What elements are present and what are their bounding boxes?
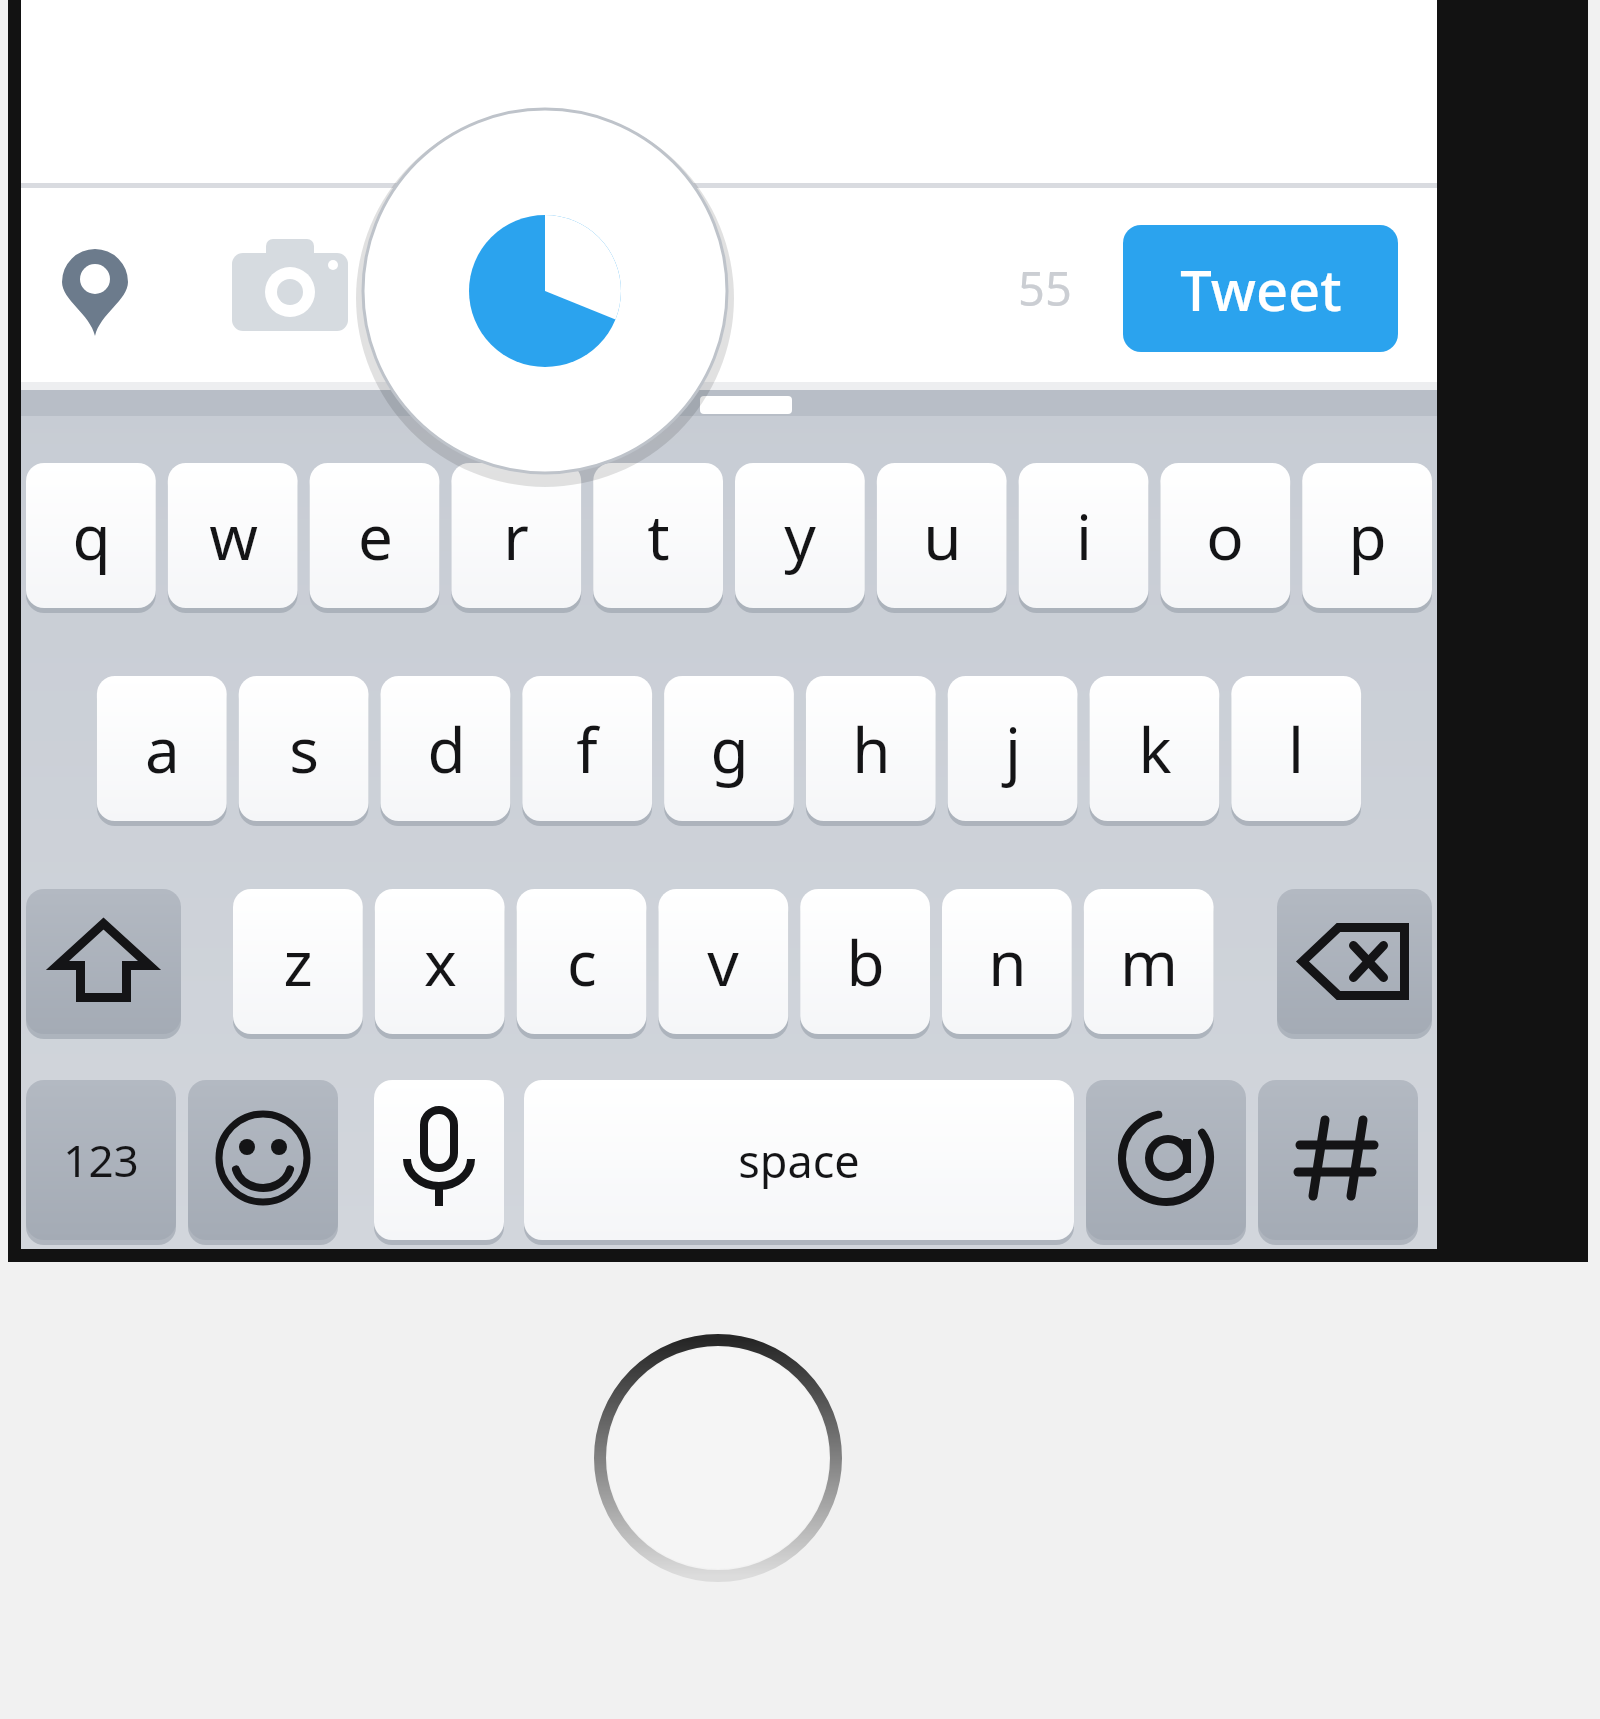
staticText: h: [852, 707, 891, 791]
staticText: k: [1138, 707, 1172, 791]
button[interactable]: Shift: [26, 889, 181, 1034]
staticText: w: [209, 494, 258, 578]
staticText: m: [1120, 920, 1178, 1004]
staticText: s: [289, 707, 319, 791]
staticText: n: [988, 920, 1027, 1004]
button[interactable]: Hashtag: [1258, 1080, 1418, 1240]
staticText: b: [846, 920, 885, 1004]
button[interactable]: At sign: [1086, 1080, 1246, 1240]
staticText: 55: [1018, 256, 1072, 320]
staticText: q: [72, 494, 111, 578]
staticText: y: [784, 494, 816, 578]
staticText: c: [567, 920, 597, 1004]
staticText: g: [710, 707, 749, 791]
button[interactable]: Character count indicator: [363, 109, 727, 473]
staticText: z: [283, 920, 313, 1004]
staticText: d: [427, 707, 466, 791]
button[interactable]: Dictate: [374, 1080, 504, 1240]
button[interactable]: Backspace: [1277, 889, 1432, 1034]
button[interactable]: Emoji keyboard: [188, 1080, 338, 1240]
staticText: r: [503, 494, 529, 578]
button[interactable]: Add photo: [228, 225, 356, 353]
staticText: v: [707, 920, 739, 1004]
staticText: x: [424, 920, 457, 1004]
staticText: l: [1288, 707, 1304, 791]
button[interactable]: Add location: [40, 228, 160, 348]
staticText: a: [145, 707, 180, 791]
staticText: p: [1348, 494, 1387, 578]
staticText: Tweet: [1180, 251, 1342, 327]
staticText: 123: [63, 1130, 139, 1190]
staticText: e: [358, 494, 393, 578]
staticText: space: [738, 1130, 860, 1191]
staticText: f: [576, 707, 598, 791]
button[interactable]: Home: [600, 1340, 836, 1576]
staticText: o: [1206, 494, 1244, 578]
staticText: i: [1076, 494, 1092, 578]
staticText: j: [1005, 707, 1021, 791]
staticText: u: [923, 494, 962, 578]
staticText: t: [647, 494, 670, 578]
